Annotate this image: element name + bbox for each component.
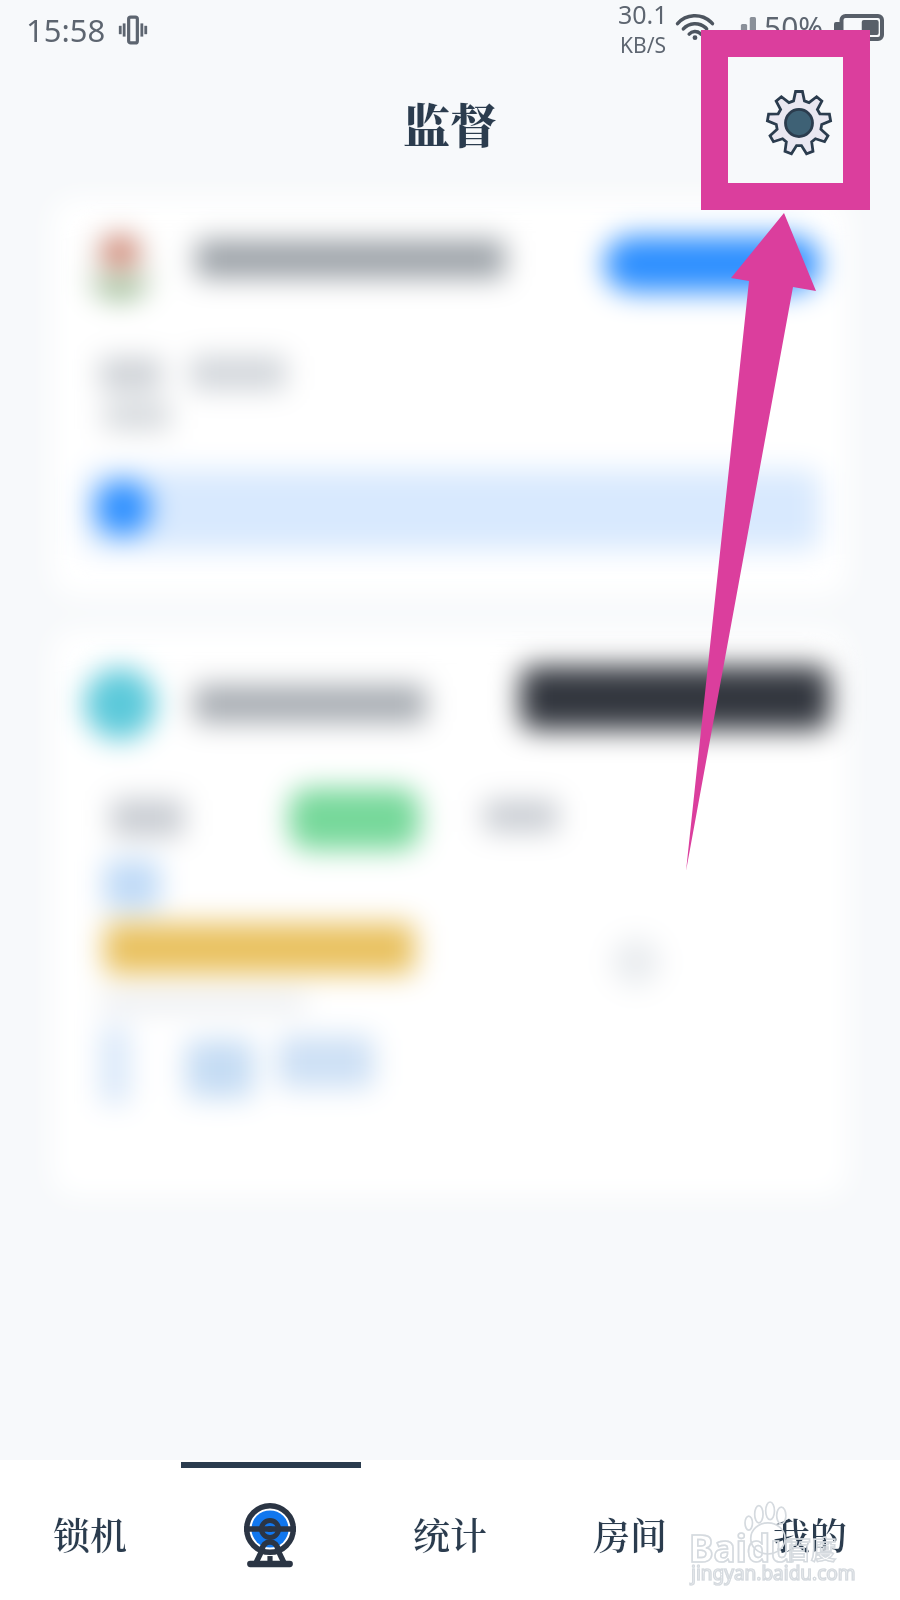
button[interactable]: Settings <box>753 77 845 169</box>
staticText: jingyan.baidu.com <box>691 1560 856 1586</box>
staticText: Baidu <box>689 1522 795 1572</box>
staticText: 50% <box>764 7 824 48</box>
staticText: 监督 <box>403 89 497 157</box>
staticText: 房间 <box>593 1507 667 1560</box>
staticText: 百度 <box>786 1530 837 1566</box>
staticText: KB/S <box>620 31 666 57</box>
staticText: 锁机 <box>53 1507 127 1560</box>
staticText: 15:58 <box>26 9 106 51</box>
button[interactable]: 监督 <box>180 1460 360 1600</box>
button[interactable]: 房间 <box>540 1460 720 1600</box>
staticText: 我的 <box>773 1507 847 1560</box>
button[interactable]: 我的 <box>720 1460 900 1600</box>
staticText: 30.1 <box>618 0 668 31</box>
staticText: 统计 <box>413 1507 487 1560</box>
button[interactable]: 锁机 <box>0 1460 180 1600</box>
button[interactable]: 统计 <box>360 1460 540 1600</box>
